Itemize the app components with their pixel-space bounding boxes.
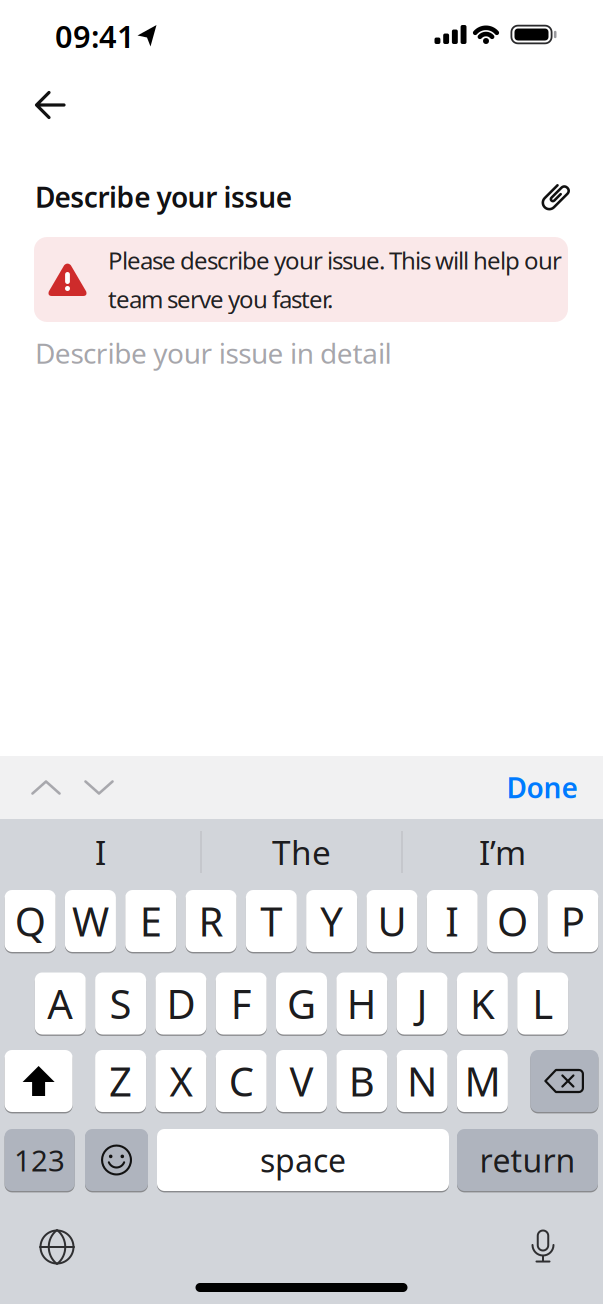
staticText: Describe your issue: [35, 178, 292, 216]
staticText: N: [407, 1054, 437, 1107]
staticText: space: [260, 1139, 346, 1181]
button[interactable]: R: [185, 890, 236, 952]
button[interactable]: return: [457, 1129, 598, 1191]
button[interactable]: M: [457, 1050, 508, 1112]
staticText: return: [479, 1139, 575, 1181]
button[interactable]: E: [125, 890, 176, 952]
staticText: A: [47, 977, 73, 1030]
button[interactable]: [79, 767, 119, 807]
button[interactable]: U: [366, 890, 417, 952]
button[interactable]: O: [487, 890, 538, 952]
button[interactable]: J: [397, 972, 448, 1034]
staticText: I’m: [479, 830, 526, 874]
button[interactable]: V: [276, 1050, 327, 1112]
button[interactable]: space: [157, 1129, 449, 1191]
button[interactable]: L: [517, 972, 568, 1034]
button[interactable]: [35, 1225, 79, 1269]
staticText: J: [417, 977, 428, 1030]
staticText: S: [110, 977, 132, 1030]
staticText: W: [72, 894, 109, 947]
staticText: 09:41: [55, 16, 135, 56]
button[interactable]: [530, 1050, 598, 1112]
button[interactable]: Z: [95, 1050, 146, 1112]
button[interactable]: Done: [506, 767, 577, 807]
staticText: K: [470, 977, 495, 1030]
staticText: G: [287, 977, 316, 1030]
button[interactable]: Q: [5, 890, 56, 952]
staticText: The: [272, 830, 331, 874]
staticText: Please describe your issue. This will he…: [108, 244, 562, 276]
button[interactable]: G: [276, 972, 327, 1034]
staticText: M: [464, 1054, 500, 1107]
staticText: Q: [15, 894, 46, 947]
button[interactable]: T: [246, 890, 297, 952]
staticText: H: [347, 977, 377, 1030]
button[interactable]: S: [95, 972, 146, 1034]
button[interactable]: [28, 83, 72, 127]
staticText: L: [532, 977, 553, 1030]
button[interactable]: [26, 767, 66, 807]
button[interactable]: Y: [306, 890, 357, 952]
button[interactable]: I: [427, 890, 478, 952]
button[interactable]: I: [5, 822, 195, 882]
staticText: D: [166, 977, 195, 1030]
staticText: X: [169, 1054, 192, 1107]
button[interactable]: P: [547, 890, 598, 952]
staticText: Z: [109, 1054, 132, 1107]
button[interactable]: N: [397, 1050, 448, 1112]
button[interactable]: C: [216, 1050, 267, 1112]
button[interactable]: [85, 1129, 148, 1191]
staticText: U: [377, 894, 406, 947]
staticText: V: [289, 1054, 313, 1107]
button[interactable]: B: [336, 1050, 387, 1112]
staticText: team serve you faster.: [108, 283, 333, 315]
button[interactable]: [5, 1050, 73, 1112]
staticText: B: [349, 1054, 375, 1107]
staticText: F: [231, 977, 252, 1030]
button[interactable]: [533, 175, 577, 219]
button[interactable]: The: [206, 822, 396, 882]
button[interactable]: W: [65, 890, 116, 952]
staticText: P: [561, 894, 585, 947]
staticText: T: [260, 894, 282, 947]
button[interactable]: K: [457, 972, 508, 1034]
staticText: C: [229, 1054, 254, 1107]
button[interactable]: A: [35, 972, 86, 1034]
button[interactable]: X: [155, 1050, 206, 1112]
staticText: O: [497, 894, 528, 947]
staticText: E: [140, 894, 162, 947]
button[interactable]: H: [336, 972, 387, 1034]
staticText: Done: [506, 769, 577, 806]
button[interactable]: [529, 1229, 557, 1265]
staticText: Y: [320, 894, 343, 947]
staticText: I: [445, 894, 459, 947]
button[interactable]: I’m: [407, 822, 597, 882]
button[interactable]: F: [216, 972, 267, 1034]
staticText: R: [198, 894, 223, 947]
staticText: 123: [14, 1140, 65, 1179]
button[interactable]: 123: [5, 1129, 75, 1191]
staticText: Describe your issue in detail: [35, 334, 392, 372]
button[interactable]: D: [155, 972, 206, 1034]
staticText: I: [95, 830, 106, 874]
